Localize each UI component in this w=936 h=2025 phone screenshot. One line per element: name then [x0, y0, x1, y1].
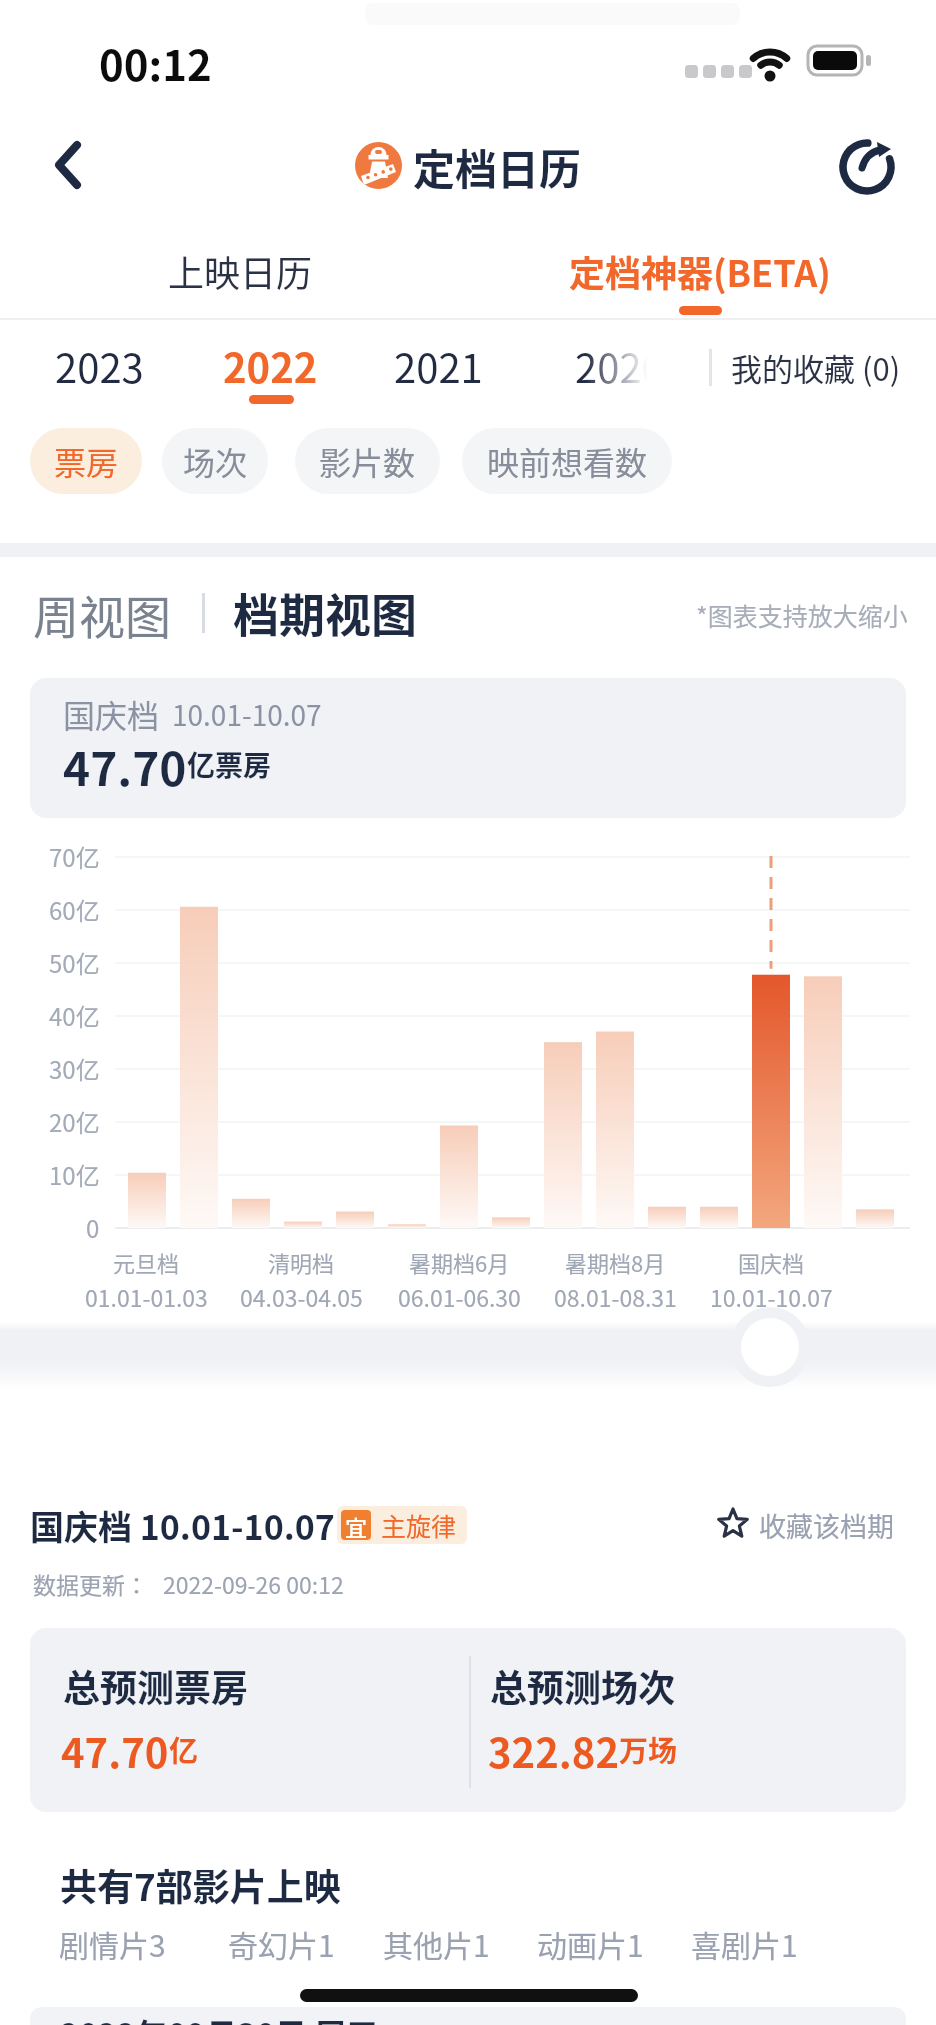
button[interactable]: 票房 [30, 428, 142, 494]
staticText: 喜剧片1 [691, 1922, 798, 1965]
staticText: 50亿 [49, 945, 100, 980]
staticText: 亿票房 [187, 744, 272, 785]
button[interactable]: 2022 [0, 0, 600, 100]
staticText: 场次 [183, 438, 248, 484]
staticText: 收藏该档期 [759, 1506, 894, 1545]
staticText: 04.03-04.05 [240, 1280, 363, 1313]
staticText: 10.01-10.07 [710, 1280, 833, 1313]
button[interactable]: 我的收藏 (0) [0, 0, 170, 100]
button[interactable] [120, 237, 360, 307]
staticText: 影片数 [319, 438, 416, 484]
staticText: 30亿 [49, 1051, 100, 1086]
button[interactable] [36, 140, 86, 190]
staticText: 票房 [54, 438, 119, 484]
staticText: 元旦档 [113, 1246, 180, 1278]
button[interactable] [838, 138, 896, 196]
staticText: 万场 [619, 1728, 678, 1770]
staticText: 0 [86, 1210, 100, 1245]
button[interactable] [740, 1317, 800, 1377]
staticText: 映前想看数 [487, 438, 648, 484]
staticText: 国庆档 [63, 691, 160, 737]
staticText: 60亿 [49, 892, 100, 927]
staticText: 档期视图 [233, 579, 417, 646]
staticText: 08.01-08.31 [554, 1280, 677, 1313]
staticText: 2023 [55, 337, 144, 395]
staticText: 40亿 [49, 998, 100, 1033]
staticText: 2022年09月30日 周五 [60, 2010, 379, 2025]
button[interactable]: 影片数 [295, 428, 440, 494]
button[interactable]: 周视图 [0, 0, 138, 100]
staticText: 322.82 [488, 1722, 619, 1774]
staticText: 定档日历 [413, 136, 582, 197]
staticText: 亿 [169, 1728, 199, 1770]
button[interactable]: 档期视图 [0, 0, 184, 100]
staticText: 2021 [394, 337, 483, 395]
button[interactable] [560, 237, 840, 307]
staticText: 宜 [345, 1510, 368, 1540]
staticText: 奇幻片1 [228, 1922, 335, 1965]
button[interactable]: 场次 [162, 428, 268, 494]
staticText: 剧情片3 [59, 1922, 166, 1965]
staticText: 上映日历 [168, 245, 313, 297]
staticText: 01.01-01.03 [85, 1280, 208, 1313]
staticText: 2022 [223, 337, 318, 395]
button[interactable] [705, 1495, 910, 1557]
staticText: 共有7部影片上映 [60, 1858, 341, 1912]
staticText: 47.70 [63, 733, 187, 791]
button[interactable]: 2021 [0, 0, 600, 100]
staticText: 其他片1 [383, 1922, 490, 1965]
staticText: 总预测场次 [490, 1659, 675, 1713]
staticText: 数据更新： [33, 1567, 148, 1600]
staticText: 周视图 [33, 581, 171, 648]
staticText: 47.70 [61, 1722, 169, 1774]
staticText: 国庆档 10.01-10.07 [30, 1501, 335, 1550]
staticText: 暑期档6月 [409, 1246, 510, 1278]
staticText: 清明档 [268, 1246, 335, 1278]
button[interactable]: 映前想看数 [462, 428, 672, 494]
staticText: 国庆档 [738, 1246, 805, 1278]
staticText: 定档神器(BETA) [569, 245, 831, 297]
staticText: 2020 [575, 337, 664, 395]
staticText: 主旋律 [381, 1507, 457, 1543]
staticText: 2022-09-26 00:12 [163, 1567, 344, 1600]
staticText: 20亿 [49, 1104, 100, 1139]
staticText: 06.01-06.30 [398, 1280, 521, 1313]
staticText: *图表支持放大缩小 [696, 597, 908, 633]
staticText: 10亿 [49, 1157, 100, 1192]
staticText: 10.01-10.07 [172, 694, 322, 735]
button[interactable]: 2023 [0, 0, 600, 100]
staticText: 总预测票房 [63, 1659, 248, 1713]
staticText: 暑期档8月 [565, 1246, 666, 1278]
staticText: 动画片1 [537, 1922, 644, 1965]
staticText: 70亿 [49, 839, 100, 874]
staticText: 我的收藏 (0) [731, 345, 901, 390]
staticText: 00:12 [99, 32, 212, 93]
